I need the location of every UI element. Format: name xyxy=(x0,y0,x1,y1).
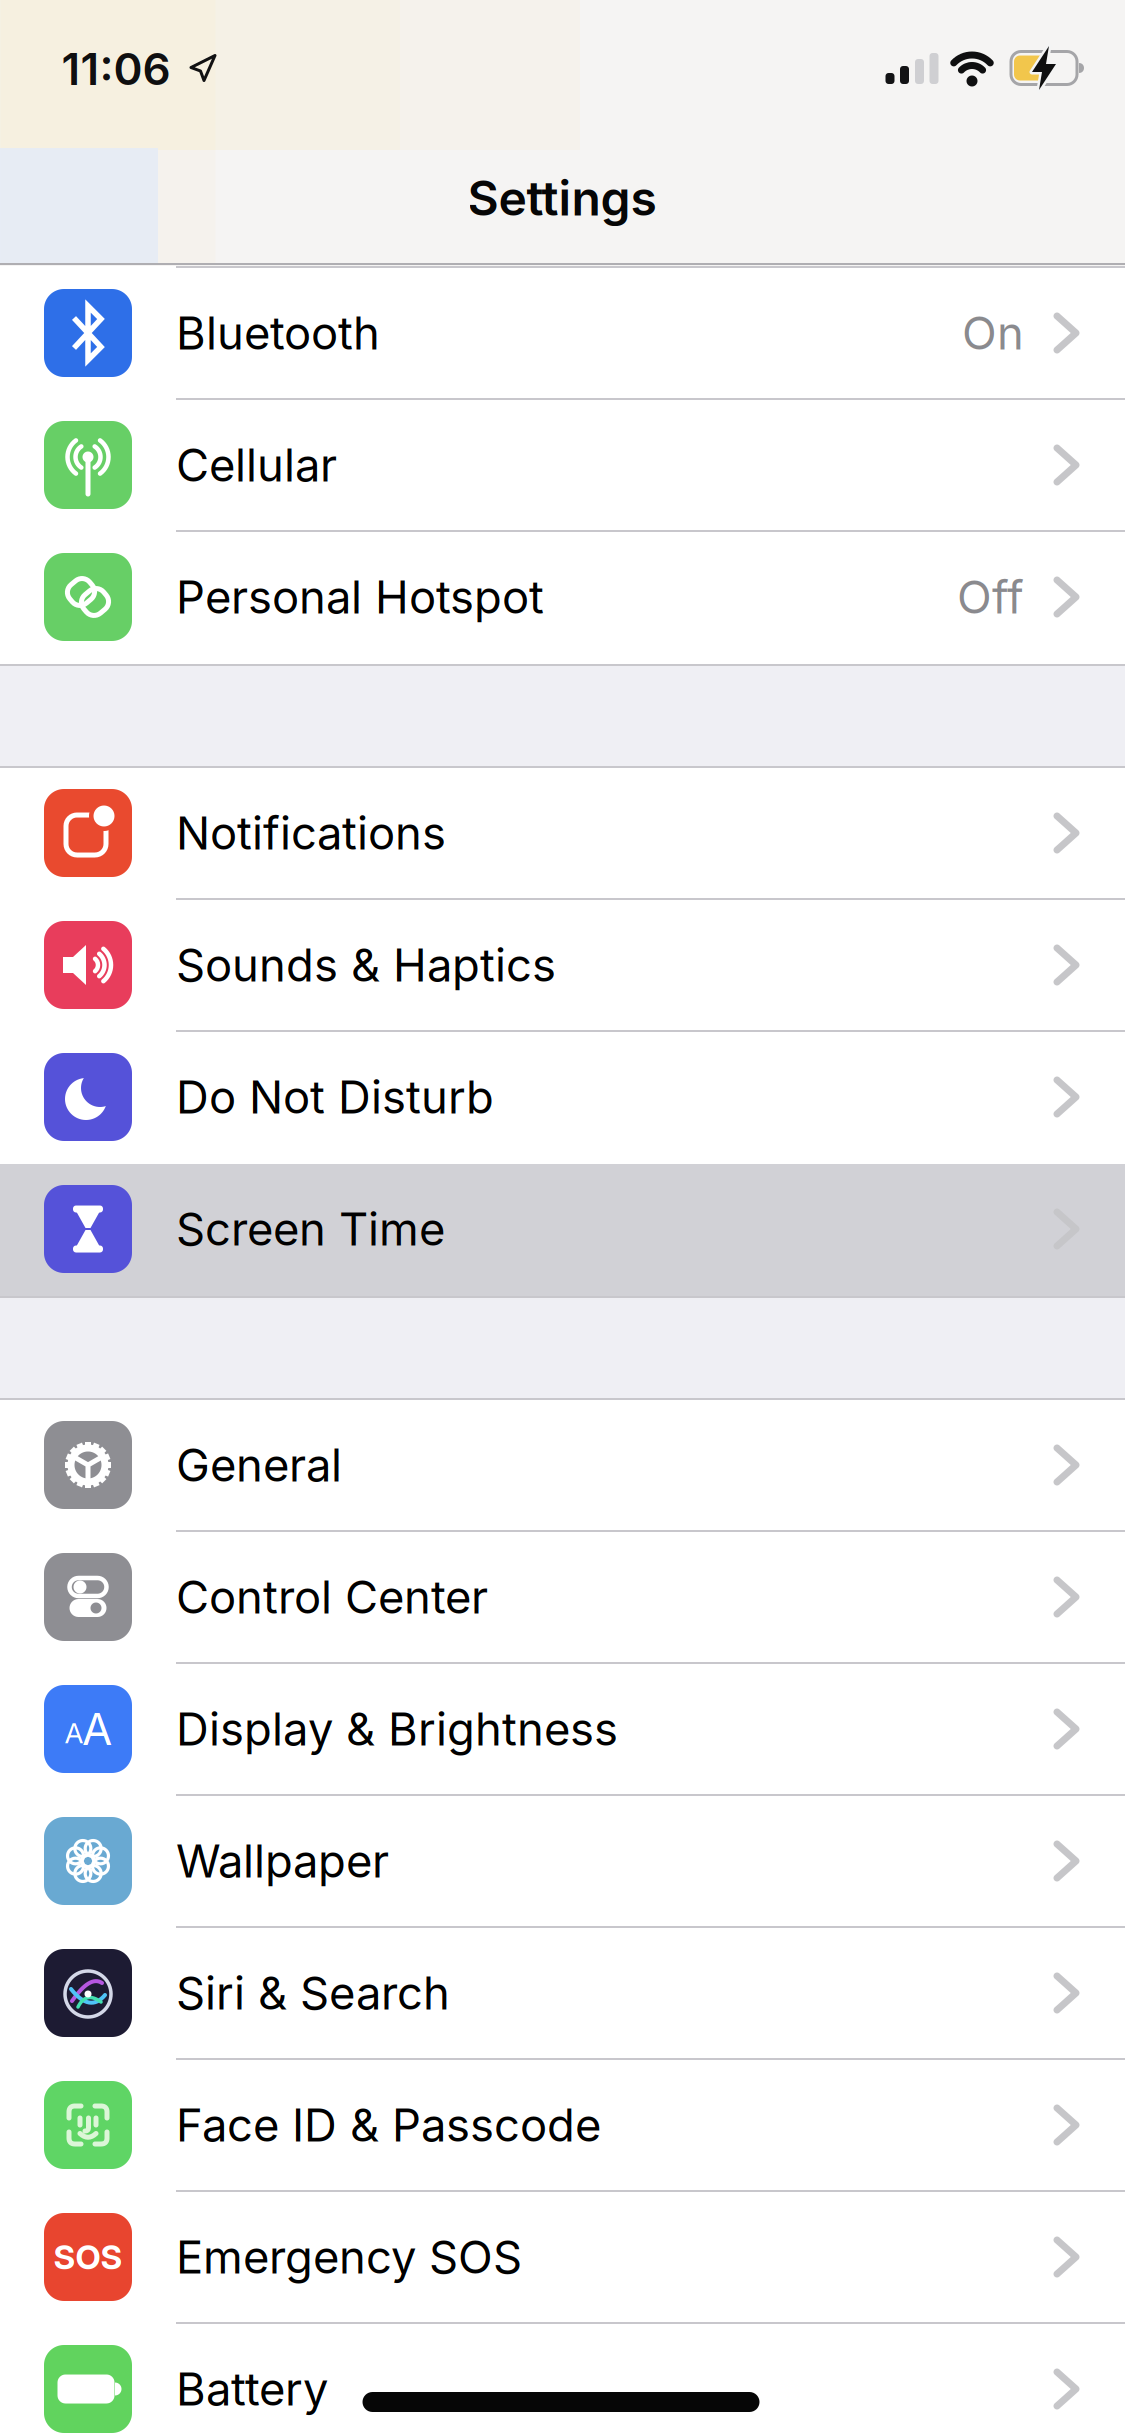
button[interactable]: Do Not Disturb xyxy=(0,1032,1125,1164)
button[interactable]: Notifications xyxy=(0,768,1125,900)
staticText: SOS xyxy=(53,2237,122,2277)
button[interactable]: SOS xyxy=(0,2192,1125,2324)
staticText: 11:06 xyxy=(61,43,170,95)
staticText: Wallpaper xyxy=(176,1834,389,1888)
staticText: Screen Time xyxy=(176,1202,445,1256)
button[interactable]: Sounds & Haptics xyxy=(0,900,1125,1032)
staticText: Settings xyxy=(467,170,656,226)
staticText: Bluetooth xyxy=(176,306,380,360)
button[interactable]: General xyxy=(0,1400,1125,1532)
staticText: A xyxy=(64,1716,83,1749)
staticText: Face ID & Passcode xyxy=(176,2098,601,2152)
staticText: On xyxy=(962,306,1024,360)
staticText: Sounds & Haptics xyxy=(176,938,556,992)
button[interactable]: Control Center xyxy=(0,1532,1125,1664)
button[interactable]: Siri & Search xyxy=(0,1928,1125,2060)
staticText: Off xyxy=(957,570,1024,624)
button[interactable]: Cellular xyxy=(0,400,1125,532)
staticText: Cellular xyxy=(176,438,337,492)
staticText: Do Not Disturb xyxy=(176,1070,494,1124)
staticText: A xyxy=(82,1703,112,1755)
staticText: Personal Hotspot xyxy=(176,570,544,624)
staticText: General xyxy=(176,1438,342,1492)
staticText: Control Center xyxy=(176,1570,488,1624)
button[interactable]: Personal Hotspot xyxy=(0,532,1125,664)
staticText: Siri & Search xyxy=(176,1966,450,2020)
staticText: Display & Brightness xyxy=(176,1702,618,1756)
staticText: Notifications xyxy=(176,806,446,860)
button[interactable]: Battery xyxy=(0,2324,1125,2436)
button[interactable]: Wallpaper xyxy=(0,1796,1125,1928)
staticText: Battery xyxy=(176,2362,328,2416)
button[interactable]: A xyxy=(0,1664,1125,1796)
button[interactable]: Bluetooth xyxy=(0,268,1125,400)
button[interactable]: Screen Time xyxy=(0,1164,1125,1296)
button[interactable]: Face ID & Passcode xyxy=(0,2060,1125,2192)
staticText: Emergency SOS xyxy=(176,2230,522,2284)
